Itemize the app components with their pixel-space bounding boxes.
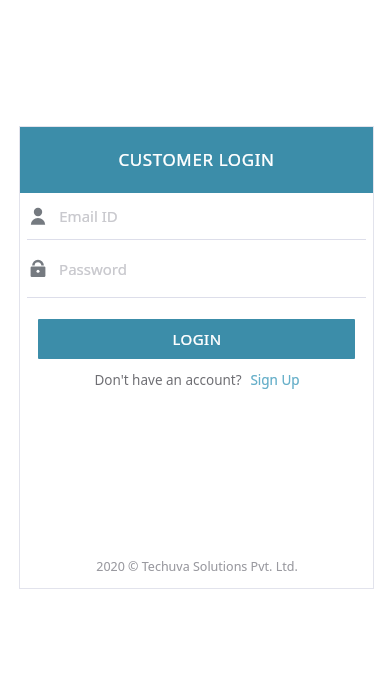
staticText: Email ID — [59, 206, 118, 226]
button[interactable]: Sign Up — [250, 371, 300, 389]
button[interactable]: Password — [19, 240, 374, 297]
staticText: Don't have an account? — [94, 371, 242, 389]
other: Email ID — [28, 206, 48, 226]
other: Password — [28, 259, 48, 279]
staticText: Password — [59, 259, 127, 279]
staticText: 2020 © Techuva Solutions Pvt. Ltd. — [96, 558, 298, 575]
button[interactable]: LOGIN — [38, 319, 355, 359]
button[interactable]: Email ID — [19, 193, 374, 239]
staticText: CUSTOMER LOGIN — [118, 148, 275, 171]
staticText: Sign Up — [250, 371, 300, 389]
staticText: LOGIN — [172, 329, 222, 349]
